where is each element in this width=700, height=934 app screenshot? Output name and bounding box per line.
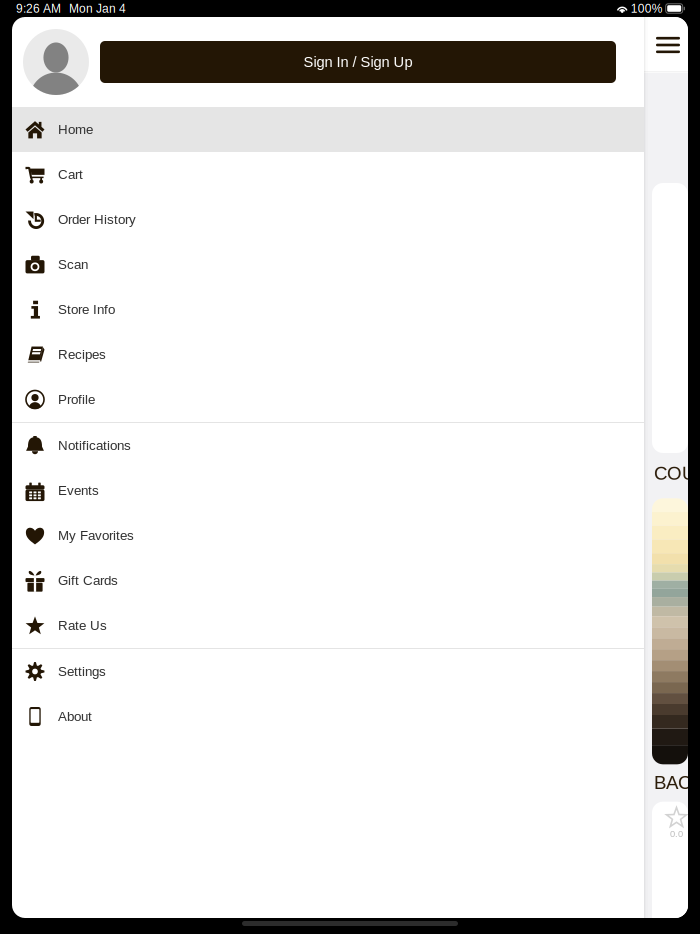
staticText: Order History bbox=[58, 212, 136, 227]
staticText: Profile bbox=[58, 392, 95, 407]
staticText: My Favorites bbox=[58, 528, 134, 543]
button[interactable]: Scan bbox=[12, 242, 644, 287]
staticText: About bbox=[58, 709, 92, 724]
button[interactable]: Menu bbox=[644, 17, 688, 73]
staticText: Notifications bbox=[58, 438, 131, 453]
button[interactable]: About bbox=[12, 694, 644, 739]
staticText: Settings bbox=[58, 664, 106, 679]
button[interactable]: Events bbox=[12, 468, 644, 513]
staticText: Gift Cards bbox=[58, 573, 118, 588]
staticText: Cart bbox=[58, 167, 83, 182]
button[interactable]: Cart bbox=[12, 152, 644, 197]
staticText: Rate Us bbox=[58, 618, 107, 633]
staticText: 9:26 AM bbox=[16, 2, 61, 15]
staticText: 100% bbox=[631, 2, 663, 15]
button[interactable]: Profile bbox=[12, 377, 644, 422]
button[interactable]: Settings bbox=[12, 649, 644, 694]
button[interactable]: Rate Us bbox=[12, 603, 644, 648]
button[interactable]: Sign In / Sign Up bbox=[100, 41, 616, 83]
staticText: Sign In / Sign Up bbox=[303, 54, 412, 70]
staticText: Recipes bbox=[58, 347, 106, 362]
staticText: 0.0 bbox=[670, 829, 683, 839]
staticText: Store Info bbox=[58, 302, 115, 317]
button[interactable]: Gift Cards bbox=[12, 558, 644, 603]
staticText: BACK bbox=[654, 772, 700, 793]
button[interactable]: Recipes bbox=[12, 332, 644, 377]
staticText: Events bbox=[58, 483, 99, 498]
button[interactable]: Home bbox=[12, 107, 644, 152]
staticText: Mon Jan 4 bbox=[69, 2, 126, 15]
staticText: Home bbox=[58, 122, 93, 137]
staticText: Scan bbox=[58, 257, 88, 272]
button[interactable]: Store Info bbox=[12, 287, 644, 332]
button[interactable]: Order History bbox=[12, 197, 644, 242]
button[interactable]: My Favorites bbox=[12, 513, 644, 558]
staticText: COU bbox=[654, 463, 695, 483]
button[interactable]: Notifications bbox=[12, 423, 644, 468]
